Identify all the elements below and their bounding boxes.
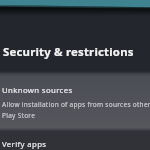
staticText: Security & restrictions	[3, 44, 134, 60]
staticText: Unknown sources	[2, 85, 73, 96]
staticText: Play Store	[2, 111, 36, 120]
staticText: Verify apps	[2, 139, 47, 150]
button[interactable]: Security & restrictions	[0, 0, 150, 71]
button[interactable]: Verify apps	[0, 132, 150, 150]
staticText: Allow installation of apps from sources …	[2, 100, 150, 109]
button[interactable]: Unknown sources	[0, 76, 150, 128]
